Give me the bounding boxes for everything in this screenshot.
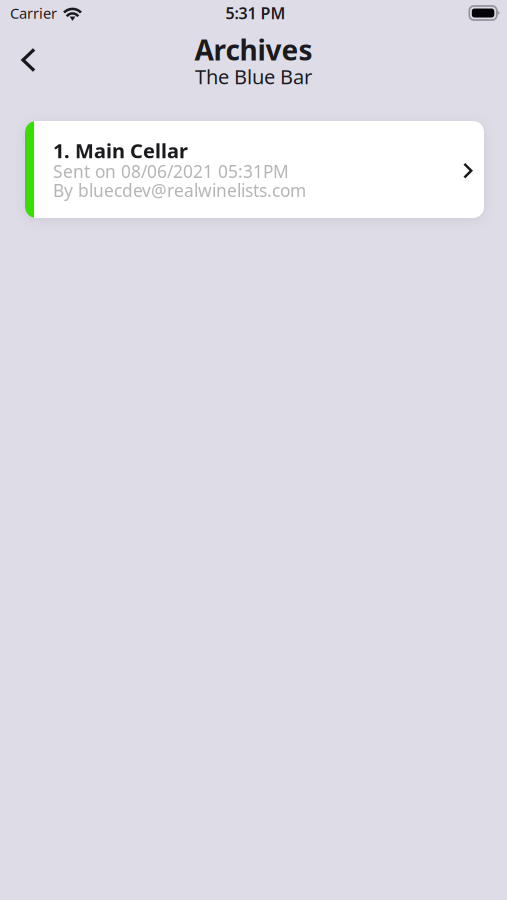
staticText: By bluecdev@realwinelists.com bbox=[53, 179, 306, 202]
staticText: 1. Main Cellar bbox=[53, 137, 188, 164]
button[interactable]: Back bbox=[5, 36, 49, 80]
staticText: The Blue Bar bbox=[195, 63, 312, 90]
staticText: 5:31 PM bbox=[225, 2, 285, 24]
staticText: Carrier bbox=[10, 3, 57, 23]
staticText: Archives bbox=[194, 31, 312, 68]
button[interactable]: 1. Main Cellar bbox=[25, 121, 484, 218]
staticText: Sent on 08/06/2021 05:31PM bbox=[53, 160, 289, 183]
